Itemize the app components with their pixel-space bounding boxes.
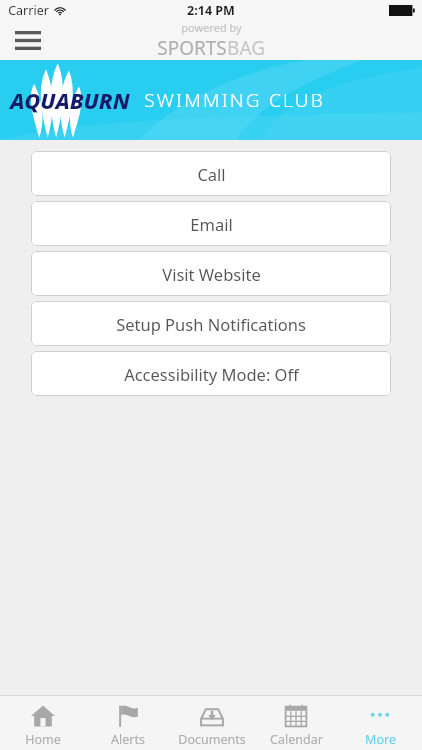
staticText: Calendar <box>270 731 323 748</box>
button[interactable]: Setup Push Notifications <box>31 301 391 346</box>
staticText: Visit Website <box>162 263 261 285</box>
staticText: 2:14 PM <box>187 2 235 19</box>
button[interactable]: Accessibility Mode: Off <box>31 351 391 396</box>
staticText: SWIMMING CLUB <box>144 87 325 113</box>
staticText: SPORTS <box>157 35 227 59</box>
button[interactable]: Menu <box>6 22 50 58</box>
staticText: Call <box>197 163 226 185</box>
button[interactable]: Alerts <box>85 696 170 750</box>
button[interactable]: Documents <box>170 696 254 750</box>
staticText: powered by <box>181 20 242 35</box>
button[interactable]: Call <box>31 151 391 196</box>
staticText: Setup Push Notifications <box>116 313 306 335</box>
staticText: More <box>365 731 396 748</box>
button[interactable]: Calendar <box>254 696 338 750</box>
staticText: BAG <box>227 35 265 59</box>
button[interactable]: Email <box>31 201 391 246</box>
staticText: Accessibility Mode: Off <box>124 363 299 385</box>
staticText: AQUABURN <box>10 85 130 115</box>
staticText: Home <box>25 731 61 748</box>
staticText: Alerts <box>111 731 145 748</box>
staticText: Documents <box>178 731 246 748</box>
button[interactable]: Home <box>0 696 85 750</box>
staticText: Carrier <box>8 2 49 19</box>
button[interactable]: Visit Website <box>31 251 391 296</box>
staticText: Email <box>190 213 233 235</box>
button[interactable]: More <box>338 696 422 750</box>
